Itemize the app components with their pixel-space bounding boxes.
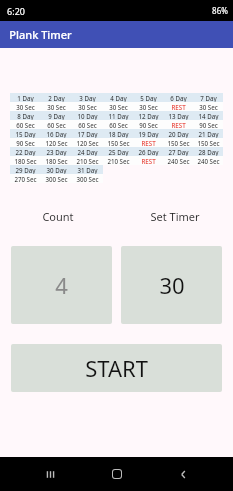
staticText: 4 Day [110,94,127,102]
staticText: 26 Day [138,148,159,156]
staticText: 5 Day [140,94,157,102]
staticText: 60 Sec [16,121,35,129]
staticText: Plank Timer [9,27,72,42]
staticText: 24 Day [77,148,98,156]
staticText: 30 Sec [139,103,158,111]
staticText: 120 Sec [76,139,99,147]
staticText: 210 Sec [107,157,130,165]
staticText: 150 Sec [197,139,220,147]
staticText: 180 Sec [14,157,37,165]
button[interactable]: 4 [11,246,112,324]
staticText: Set Timer [150,209,200,224]
staticText: REST [171,121,186,129]
staticText: 22 Day [15,148,36,156]
staticText: 30 Sec [78,103,97,111]
staticText: 30 Sec [109,103,128,111]
staticText: 120 Sec [45,139,68,147]
staticText: REST [141,157,156,165]
button[interactable]: Recent apps [33,457,67,491]
staticText: 30 Day [46,166,67,174]
staticText: 20 Day [168,130,189,138]
staticText: 210 Sec [76,157,99,165]
staticText: 25 Day [108,148,129,156]
staticText: 16 Day [46,130,67,138]
staticText: 31 Day [77,166,98,174]
staticText: 27 Day [168,148,189,156]
staticText: 300 Sec [45,175,68,183]
staticText: 17 Day [77,130,98,138]
staticText: Count [42,209,74,224]
staticText: 240 Sec [167,157,190,165]
staticText: 30 Sec [199,103,218,111]
staticText: 11 Day [108,112,129,120]
staticText: 90 Sec [16,139,35,147]
staticText: 270 Sec [14,175,37,183]
staticText: 60 Sec [47,121,66,129]
staticText: 4 [55,270,68,300]
staticText: 30 [159,270,185,300]
staticText: 240 Sec [197,157,220,165]
staticText: 13 Day [168,112,189,120]
staticText: 6:20 [7,5,25,17]
staticText: 150 Sec [167,139,190,147]
staticText: 19 Day [138,130,159,138]
staticText: 150 Sec [107,139,130,147]
staticText: 86% [212,5,228,16]
staticText: 14 Day [198,112,219,120]
staticText: REST [141,139,156,147]
staticText: 28 Day [198,148,219,156]
staticText: 2 Day [48,94,65,102]
staticText: 60 Sec [109,121,128,129]
button[interactable]: Home [100,457,134,491]
button[interactable]: Back [166,457,200,491]
staticText: 8 Day [17,112,34,120]
staticText: 30 Sec [47,103,66,111]
staticText: 1 Day [17,94,34,102]
staticText: 21 Day [198,130,219,138]
staticText: 15 Day [15,130,36,138]
staticText: 12 Day [138,112,159,120]
staticText: START [85,353,148,383]
staticText: 10 Day [77,112,98,120]
staticText: 60 Sec [78,121,97,129]
staticText: 18 Day [108,130,129,138]
staticText: REST [171,103,186,111]
staticText: 7 Day [200,94,217,102]
staticText: 180 Sec [45,157,68,165]
staticText: 6 Day [170,94,187,102]
button[interactable]: START [11,344,222,392]
staticText: 300 Sec [76,175,99,183]
button[interactable]: 30 [121,246,222,324]
staticText: 3 Day [79,94,96,102]
staticText: 90 Sec [199,121,218,129]
staticText: 29 Day [15,166,36,174]
staticText: 30 Sec [16,103,35,111]
staticText: 9 Day [48,112,65,120]
staticText: 90 Sec [139,121,158,129]
staticText: 23 Day [46,148,67,156]
